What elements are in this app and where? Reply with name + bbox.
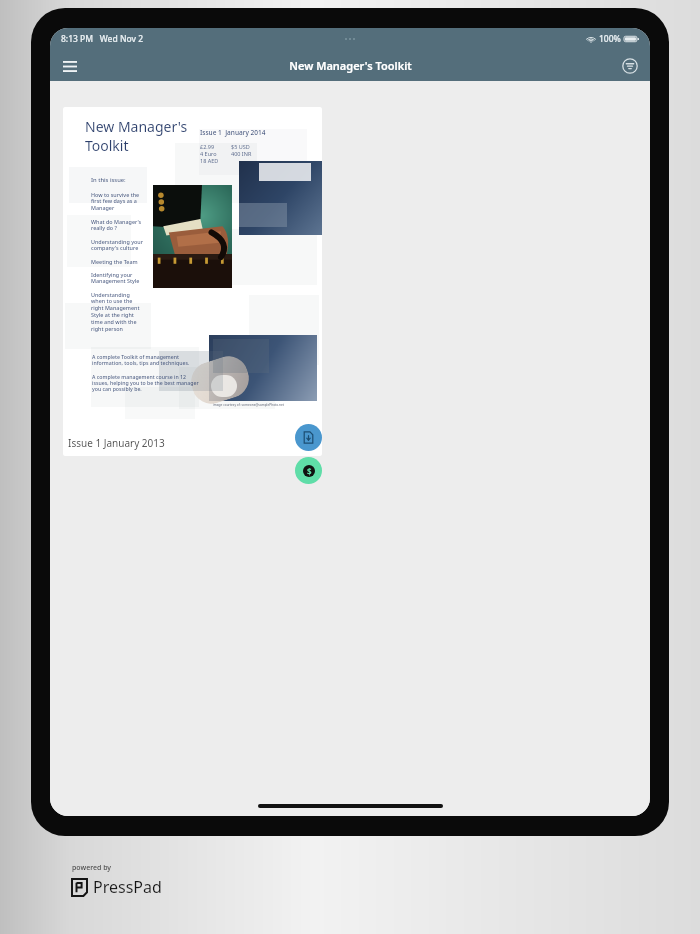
staticText: powered by: [72, 863, 112, 873]
staticText: 4 Euro: [200, 150, 217, 157]
staticText: New Manager's Toolkit: [289, 58, 412, 73]
staticText: Understanding when to use the right Mana…: [91, 291, 140, 333]
staticText: How to survive the first few days as a M…: [91, 191, 140, 212]
staticText: 100%: [599, 33, 621, 45]
staticText: Issue 1 January 2013: [68, 436, 165, 450]
button[interactable]: Open navigation menu: [57, 53, 83, 79]
staticText: 18 AED: [200, 157, 219, 164]
staticText: 400 INR: [231, 150, 252, 157]
button[interactable]: Filter issues: [618, 54, 642, 78]
staticText: Toolkit: [85, 136, 129, 155]
staticText: 8:13 PM Wed Nov 2: [61, 33, 144, 45]
staticText: A complete management course in 12 issue…: [92, 373, 199, 393]
button[interactable]: Buy issue: [295, 457, 322, 484]
staticText: $5 USD: [231, 143, 250, 150]
staticText: Understanding your company's culture: [91, 238, 143, 252]
button[interactable]: Download issue: [295, 424, 322, 451]
staticText: £2.99: [200, 143, 215, 150]
staticText: Issue 1 January 2014: [200, 128, 266, 137]
staticText: $: [307, 466, 312, 477]
staticText: image courtesy of: someone@samplePhoto.n…: [213, 403, 284, 407]
staticText: A complete Toolkit of management informa…: [92, 353, 190, 367]
staticText: New Manager's: [85, 117, 188, 136]
staticText: Identifying your Management Style: [91, 271, 140, 285]
staticText: What do Manager's really do ?: [91, 218, 142, 232]
staticText: Meeting the Team: [91, 258, 138, 265]
button[interactable]: New Manager's: [63, 107, 322, 456]
staticText: In this issue:: [91, 176, 126, 184]
staticText: PressPad: [93, 876, 162, 898]
